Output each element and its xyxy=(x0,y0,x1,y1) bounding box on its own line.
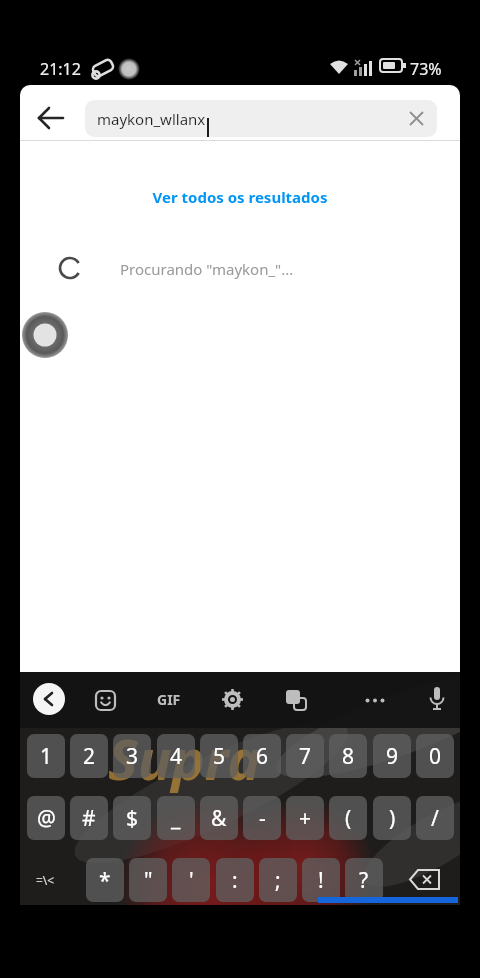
button[interactable]: " xyxy=(129,858,167,902)
staticText: ; xyxy=(275,866,281,895)
button[interactable] xyxy=(410,870,440,890)
button[interactable]: ' xyxy=(172,858,210,902)
button[interactable]: 7 xyxy=(286,734,324,778)
button[interactable]: 5 xyxy=(200,734,238,778)
staticText: 9 xyxy=(386,742,399,771)
button[interactable]: $ xyxy=(113,796,151,840)
button[interactable]: ) xyxy=(373,796,411,840)
staticText: 5 xyxy=(213,742,226,771)
staticText: 3 xyxy=(126,742,139,771)
button[interactable]: # xyxy=(70,796,108,840)
staticText: maykon_wllanx xyxy=(97,109,206,129)
button[interactable] xyxy=(222,689,243,710)
button[interactable] xyxy=(286,690,306,710)
button[interactable]: =\< xyxy=(36,872,55,888)
staticText: - xyxy=(259,804,266,833)
button[interactable]: ( xyxy=(329,796,367,840)
staticText: ) xyxy=(389,804,396,833)
button[interactable]: 6 xyxy=(243,734,281,778)
button[interactable]: 9 xyxy=(373,734,411,778)
button[interactable]: / xyxy=(416,796,454,840)
staticText: 6 xyxy=(256,742,269,771)
staticText: ( xyxy=(345,804,352,833)
staticText: Procurando "maykon_"... xyxy=(120,259,294,279)
staticText: ? xyxy=(359,866,369,895)
button[interactable] xyxy=(33,683,65,715)
staticText: 0 xyxy=(429,742,442,771)
staticText: Supra xyxy=(108,720,261,796)
staticText: / xyxy=(431,804,439,833)
staticText: 21:12 xyxy=(40,58,81,80)
button[interactable]: Ver todos os resultados xyxy=(20,187,460,207)
staticText: @ xyxy=(37,804,56,833)
staticText: $ xyxy=(126,804,139,833)
button[interactable]: 3 xyxy=(113,734,151,778)
button[interactable]: 8 xyxy=(329,734,367,778)
button[interactable]: ; xyxy=(259,858,297,902)
button[interactable]: 2 xyxy=(70,734,108,778)
button[interactable] xyxy=(96,691,115,710)
staticText: 2 xyxy=(83,742,96,771)
staticText: : xyxy=(232,866,238,895)
button[interactable]: 0 xyxy=(416,734,454,778)
button[interactable]: + xyxy=(286,796,324,840)
button[interactable]: 1 xyxy=(27,734,65,778)
button[interactable]: ! xyxy=(302,858,340,902)
staticText: 4 xyxy=(170,742,183,771)
staticText: # xyxy=(82,804,96,833)
button[interactable]: - xyxy=(243,796,281,840)
button[interactable]: 4 xyxy=(157,734,195,778)
button[interactable]: * xyxy=(86,858,124,902)
button[interactable]: & xyxy=(200,796,238,840)
button[interactable]: ? xyxy=(345,858,383,902)
button[interactable]: _ xyxy=(157,796,195,840)
button[interactable]: GIF xyxy=(157,690,181,709)
staticText: ' xyxy=(189,866,194,895)
staticText: * xyxy=(99,866,111,895)
staticText: 8 xyxy=(342,742,355,771)
staticText: " xyxy=(144,866,153,895)
button[interactable]: maykon_wllanx xyxy=(85,100,437,137)
staticText: 73% xyxy=(410,58,442,80)
button[interactable] xyxy=(430,687,444,712)
staticText: ! xyxy=(318,866,324,895)
staticText: + xyxy=(299,804,312,833)
button[interactable]: : xyxy=(216,858,254,902)
button[interactable] xyxy=(38,106,64,130)
button[interactable] xyxy=(410,112,423,125)
staticText: _ xyxy=(171,804,181,833)
button[interactable]: @ xyxy=(27,796,65,840)
staticText: 1 xyxy=(40,742,53,771)
staticText: & xyxy=(211,804,227,833)
staticText: 7 xyxy=(299,742,312,771)
button[interactable] xyxy=(365,698,385,703)
